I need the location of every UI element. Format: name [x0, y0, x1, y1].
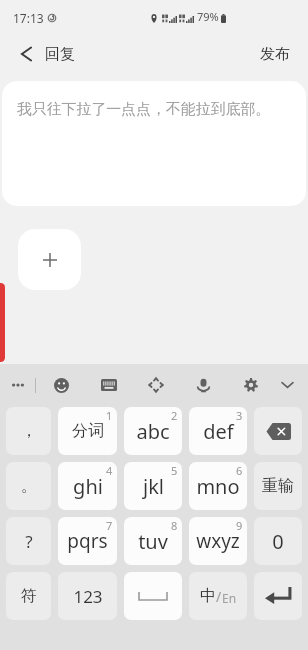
- staticText: wxyz: [196, 528, 240, 554]
- staticText: /: [216, 587, 222, 606]
- button[interactable]: 表情: [41, 364, 81, 400]
- staticText: 3: [236, 408, 243, 423]
- staticText: tuv: [138, 528, 168, 555]
- button[interactable]: ?: [6, 517, 51, 565]
- staticText: 0: [272, 528, 284, 555]
- staticText: 分词: [72, 421, 104, 441]
- staticText: abc: [136, 418, 170, 445]
- staticText: jkl: [143, 473, 164, 500]
- button[interactable]: 添加图片: [18, 229, 81, 290]
- button[interactable]: 。: [6, 462, 51, 510]
- button[interactable]: 符: [6, 572, 51, 620]
- button[interactable]: 设置: [231, 364, 271, 400]
- button[interactable]: 空格: [124, 572, 182, 620]
- staticText: 17:13: [13, 10, 44, 26]
- button[interactable]: tuv: [124, 517, 182, 565]
- staticText: 发布: [260, 45, 290, 64]
- staticText: 6: [236, 463, 243, 478]
- staticText: 回复: [45, 45, 75, 64]
- staticText: 5: [171, 463, 178, 478]
- staticText: mno: [196, 473, 240, 500]
- button[interactable]: 更多: [2, 364, 34, 400]
- button[interactable]: pqrs: [58, 517, 117, 565]
- button[interactable]: 发布: [242, 36, 308, 72]
- button[interactable]: 回车: [254, 572, 302, 620]
- staticText: 。: [21, 476, 37, 496]
- button[interactable]: 收起键盘: [267, 364, 307, 400]
- staticText: 1: [106, 408, 113, 423]
- staticText: ，: [21, 421, 37, 441]
- staticText: def: [203, 418, 234, 445]
- button[interactable]: wxyz: [189, 517, 247, 565]
- staticText: 我只往下拉了一点点，不能拉到底部。: [17, 100, 271, 119]
- button[interactable]: ，: [6, 407, 51, 455]
- staticText: 2: [171, 408, 178, 423]
- staticText: 中: [200, 586, 216, 606]
- button[interactable]: 回复: [0, 36, 87, 72]
- staticText: 4: [106, 463, 113, 478]
- button[interactable]: def: [189, 407, 247, 455]
- button[interactable]: 重输: [254, 462, 302, 510]
- staticText: En: [222, 590, 237, 606]
- button[interactable]: 123: [58, 572, 117, 620]
- staticText: 8: [171, 518, 178, 533]
- button[interactable]: jkl: [124, 462, 182, 510]
- staticText: pqrs: [67, 528, 108, 554]
- button[interactable]: 光标移动: [136, 364, 176, 400]
- button[interactable]: 0: [254, 517, 302, 565]
- button[interactable]: mno: [189, 462, 247, 510]
- button[interactable]: ghi: [58, 462, 117, 510]
- staticText: 79%: [197, 9, 219, 24]
- staticText: ghi: [73, 473, 103, 500]
- staticText: 7: [106, 518, 113, 533]
- staticText: ?: [25, 530, 33, 553]
- staticText: 123: [73, 585, 103, 608]
- staticText: 重输: [262, 476, 294, 496]
- button[interactable]: 我只往下拉了一点点，不能拉到底部。: [2, 81, 306, 206]
- staticText: 9: [236, 518, 243, 533]
- button[interactable]: 中: [189, 572, 247, 620]
- button[interactable]: 键盘: [89, 364, 129, 400]
- button[interactable]: 语音输入: [183, 364, 223, 400]
- button[interactable]: 分词: [58, 407, 117, 455]
- button[interactable]: 退格: [254, 407, 302, 455]
- staticText: 符: [21, 586, 37, 606]
- button[interactable]: abc: [124, 407, 182, 455]
